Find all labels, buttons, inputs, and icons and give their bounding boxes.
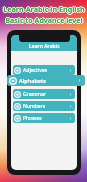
button[interactable]: Phrases: [13, 113, 75, 123]
staticText: Basic to Advance level: [5, 17, 83, 27]
staticText: Phrases: [23, 115, 42, 122]
other: Open: [77, 78, 82, 83]
staticText: Basic to Advance level: [5, 15, 83, 25]
button[interactable]: Adjectives: [13, 65, 75, 75]
staticText: Adjectives: [23, 67, 48, 74]
staticText: Alphabets: [19, 77, 47, 84]
staticText: Numbers: [23, 103, 46, 110]
other: Open: [68, 92, 73, 97]
staticText: Learn Arabic in English: [3, 3, 85, 13]
other: Open: [68, 68, 73, 73]
staticText: Learn Arabic in English: [3, 4, 85, 14]
button[interactable]: Grammar: [13, 89, 75, 99]
other: Open: [68, 116, 73, 121]
staticText: Learn Arabic: [29, 43, 60, 50]
staticText: Basic to Advance level: [4, 16, 82, 26]
button[interactable]: Alphabets: [7, 75, 85, 86]
staticText: Learn Arabic in English: [2, 4, 84, 14]
other: Open: [68, 104, 73, 109]
staticText: Grammar: [23, 91, 46, 98]
staticText: Learn Arabic in English: [4, 4, 86, 14]
staticText: Learn Arabic in English: [3, 5, 85, 15]
staticText: Basic to Advance level: [5, 16, 83, 26]
button[interactable]: Numbers: [13, 101, 75, 111]
staticText: Basic to Advance level: [6, 16, 84, 26]
